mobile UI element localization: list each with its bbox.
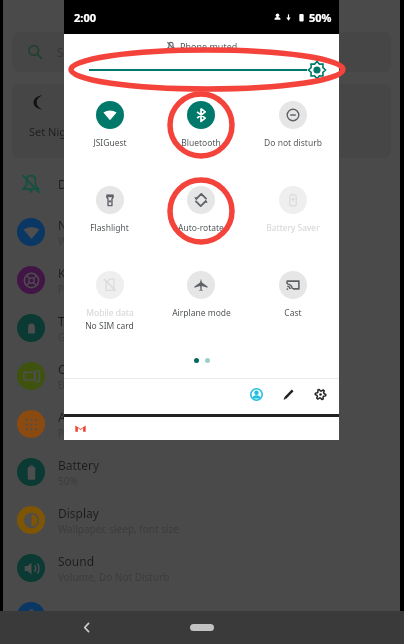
button[interactable]: Back [80,621,93,634]
staticText: Keyboard & input [58,265,157,281]
button[interactable]: Do not disturb [247,96,339,181]
button[interactable]: Battery [3,448,400,496]
button[interactable]: Set Night Light schedule [12,84,391,158]
button[interactable]: Connected devices [3,352,400,400]
staticText: Phone muted [180,40,238,52]
staticText: Permissions, default apps [58,426,179,440]
button[interactable]: Touchscreen [3,304,400,352]
button[interactable]: Search settings [12,32,391,72]
button[interactable]: Cast [247,266,339,351]
button[interactable]: Network & internet [3,208,400,256]
staticText: Battery [58,457,100,473]
staticText: Cast [284,307,302,319]
staticText: Wallpaper, sleep, font size [58,522,179,536]
button[interactable]: Sound [3,544,400,592]
staticText: Battery Saver [266,222,320,234]
staticText: Volume, Do Not Disturb [58,570,170,584]
staticText: Prompts, keyboard [58,282,147,296]
button[interactable]: Device notifications [3,160,400,208]
staticText: 50% [58,474,78,488]
staticText: Mobile data [86,307,134,319]
staticText: No SIM card [85,320,134,332]
button[interactable]: Airplane mode [155,266,247,351]
staticText: Bluetooth [58,378,105,392]
button[interactable]: Keyboard & input [3,256,400,304]
staticText: Display [58,505,99,521]
staticText: Sound [58,553,95,569]
button[interactable]: JSIGuest [64,96,155,181]
staticText: Connected devices [58,361,164,377]
button[interactable] [64,417,339,440]
staticText: Network & internet [58,217,167,233]
staticText: Bluetooth [181,137,221,149]
staticText: 2:00 [74,10,96,25]
staticText: Wi-Fi, mobile, data usage, hotspot [58,234,218,248]
button[interactable]: Edit tiles [275,381,301,407]
staticText: Search settings [57,44,143,60]
staticText: 50% [309,10,332,25]
staticText: Airplane mode [172,307,231,319]
staticText: Auto-rotate [178,222,224,234]
staticText: Apps & notifications [58,409,171,425]
staticText: Gestures [58,330,100,344]
staticText: JSIGuest [93,137,127,149]
staticText: Storage [58,608,102,624]
button[interactable]: Settings [307,381,333,407]
staticText: Do not disturb [264,137,322,149]
staticText: Set Night Light schedule [29,124,155,139]
button[interactable]: Flashlight [64,181,155,266]
staticText: Touchscreen [58,313,129,329]
button[interactable]: Display [3,496,400,544]
button[interactable]: Storage [3,592,400,640]
button[interactable]: Bluetooth [155,96,247,181]
button[interactable]: Mobile data [64,266,155,351]
button[interactable]: Auto-rotate [155,181,247,266]
button[interactable]: Apps & notifications [3,400,400,448]
button[interactable]: Home [190,624,214,631]
button[interactable]: User [243,381,269,407]
staticText: Flashlight [90,222,129,234]
button[interactable]: Battery Saver [247,181,339,266]
staticText: Device notifications [58,176,168,192]
